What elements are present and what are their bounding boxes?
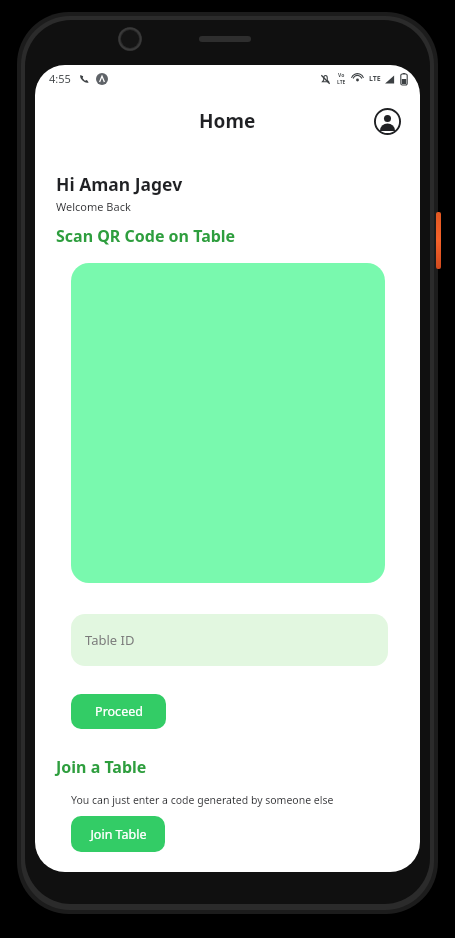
- staticText: Welcome Back: [56, 199, 131, 214]
- staticText: LTE: [369, 74, 381, 84]
- staticText: Hi Aman Jagev: [56, 172, 183, 196]
- staticText: Scan QR Code on Table: [56, 225, 236, 247]
- button[interactable]: QR scanner preview: [71, 263, 385, 583]
- staticText: Table ID: [85, 631, 135, 649]
- staticText: Home: [199, 108, 256, 134]
- staticText: 4:55: [49, 71, 71, 86]
- staticText: Proceed: [95, 703, 143, 720]
- staticText: Join Table: [90, 826, 147, 843]
- staticText: You can just enter a code generated by s…: [71, 793, 334, 807]
- staticText: Vo: [338, 72, 345, 79]
- button[interactable]: Account: [369, 103, 405, 139]
- button[interactable]: Proceed: [71, 694, 166, 729]
- button[interactable]: Table ID: [71, 614, 388, 666]
- staticText: LTE: [337, 79, 346, 86]
- staticText: Join a Table: [56, 756, 147, 778]
- button[interactable]: Join Table: [71, 816, 165, 852]
